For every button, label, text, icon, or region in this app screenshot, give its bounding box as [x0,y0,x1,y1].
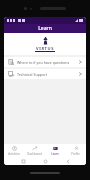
staticText: Technical Support [17,72,79,77]
staticText: Dashboard [27,152,42,156]
staticText: Profile [71,152,80,156]
button[interactable]: Home [41,157,49,165]
button[interactable]: Recent apps [19,157,27,165]
button[interactable]: Learn [44,144,65,157]
button[interactable]: Profile [65,144,86,157]
button[interactable]: Where to if you have questions [4,57,86,67]
button[interactable]: Dashboard [24,144,44,157]
button[interactable]: Technical Support [4,69,86,79]
staticText: Learn [38,25,52,32]
button[interactable]: Back [64,157,72,165]
staticText: Activities [8,152,20,156]
staticText: Where to if you have questions [17,60,79,65]
button[interactable]: Activities [4,144,24,157]
staticText: VIRTUS [36,46,54,51]
staticText: Learn [51,152,59,156]
